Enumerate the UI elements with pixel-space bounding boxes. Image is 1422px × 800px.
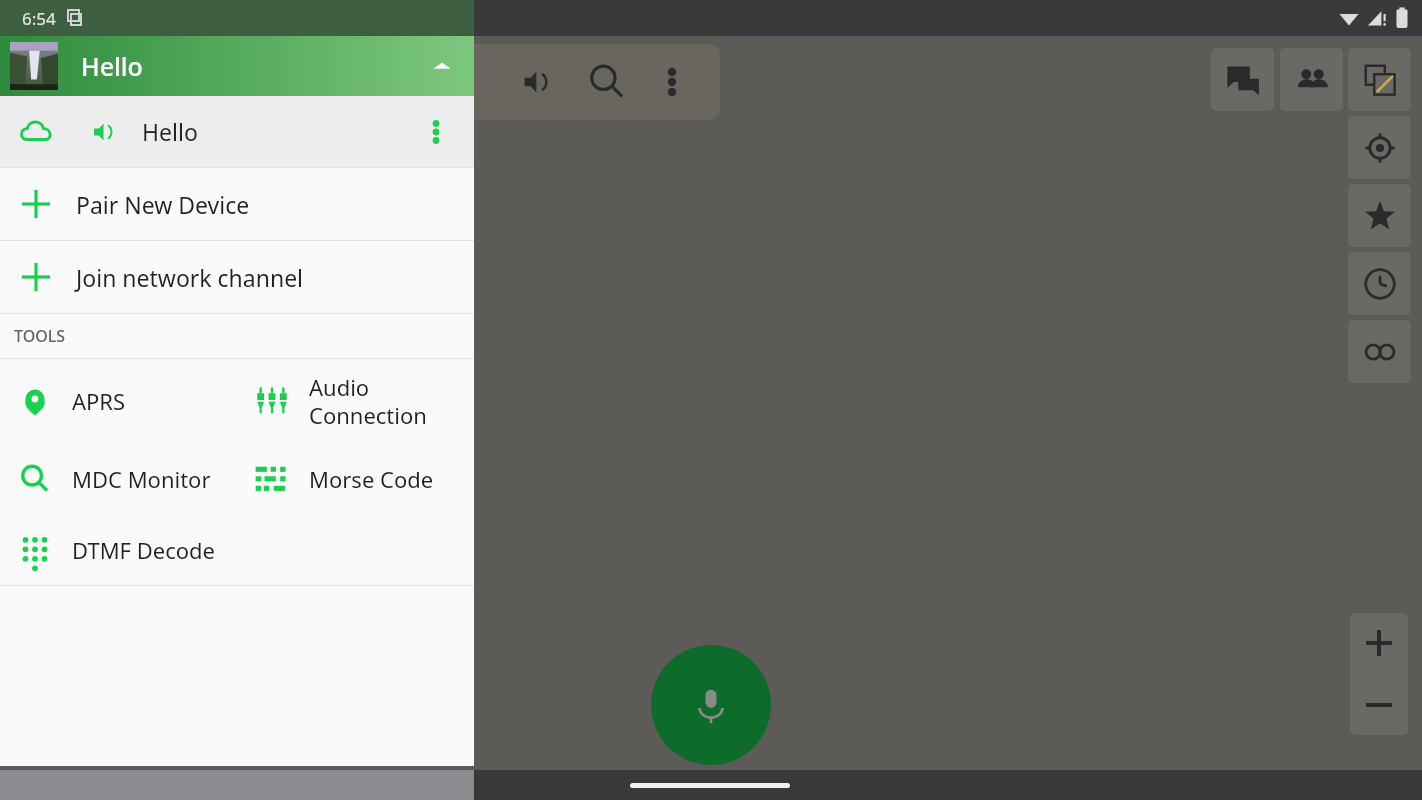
button[interactable]: DTMF Decode [0,514,237,585]
staticText: Hello [142,116,198,147]
button[interactable]: Map layers [1348,48,1411,111]
button[interactable]: Channel options [416,112,456,152]
staticText: MDC Monitor [72,464,211,494]
button[interactable]: MDC Monitor [0,443,237,514]
button[interactable]: Contacts [1280,48,1343,111]
staticText: Morse Code [309,464,434,494]
staticText: Hello [81,49,143,83]
staticText: TOOLS [14,325,66,347]
staticText: Join network channel [76,262,304,293]
button[interactable]: Favorites [1348,184,1411,247]
button[interactable]: History [1348,252,1411,315]
button[interactable]: Search [580,55,634,109]
button[interactable]: Morse Code [237,443,474,514]
button[interactable]: APRS [0,359,237,443]
staticText: Pair New Device [76,189,250,220]
button[interactable]: Hello [0,96,474,167]
button[interactable]: Zoom out [1350,674,1408,735]
button[interactable]: Pair New Device [0,168,474,240]
button[interactable]: Tracks [1348,320,1411,383]
button[interactable]: More options [648,58,696,106]
button[interactable]: Messages [1211,48,1274,111]
button[interactable]: Hello [0,36,474,96]
staticText: APRS [72,386,126,416]
button[interactable]: My location [1348,116,1411,179]
staticText: 6:54 [22,7,56,30]
button[interactable]: Volume [510,55,564,109]
button[interactable]: Join network channel [0,241,474,313]
staticText: Audio Connection [309,372,427,430]
staticText: DTMF Decode [72,535,216,565]
button[interactable]: Zoom in [1350,613,1408,673]
button[interactable]: Push to talk [651,645,771,765]
button[interactable]: Audio Connection [237,359,474,443]
